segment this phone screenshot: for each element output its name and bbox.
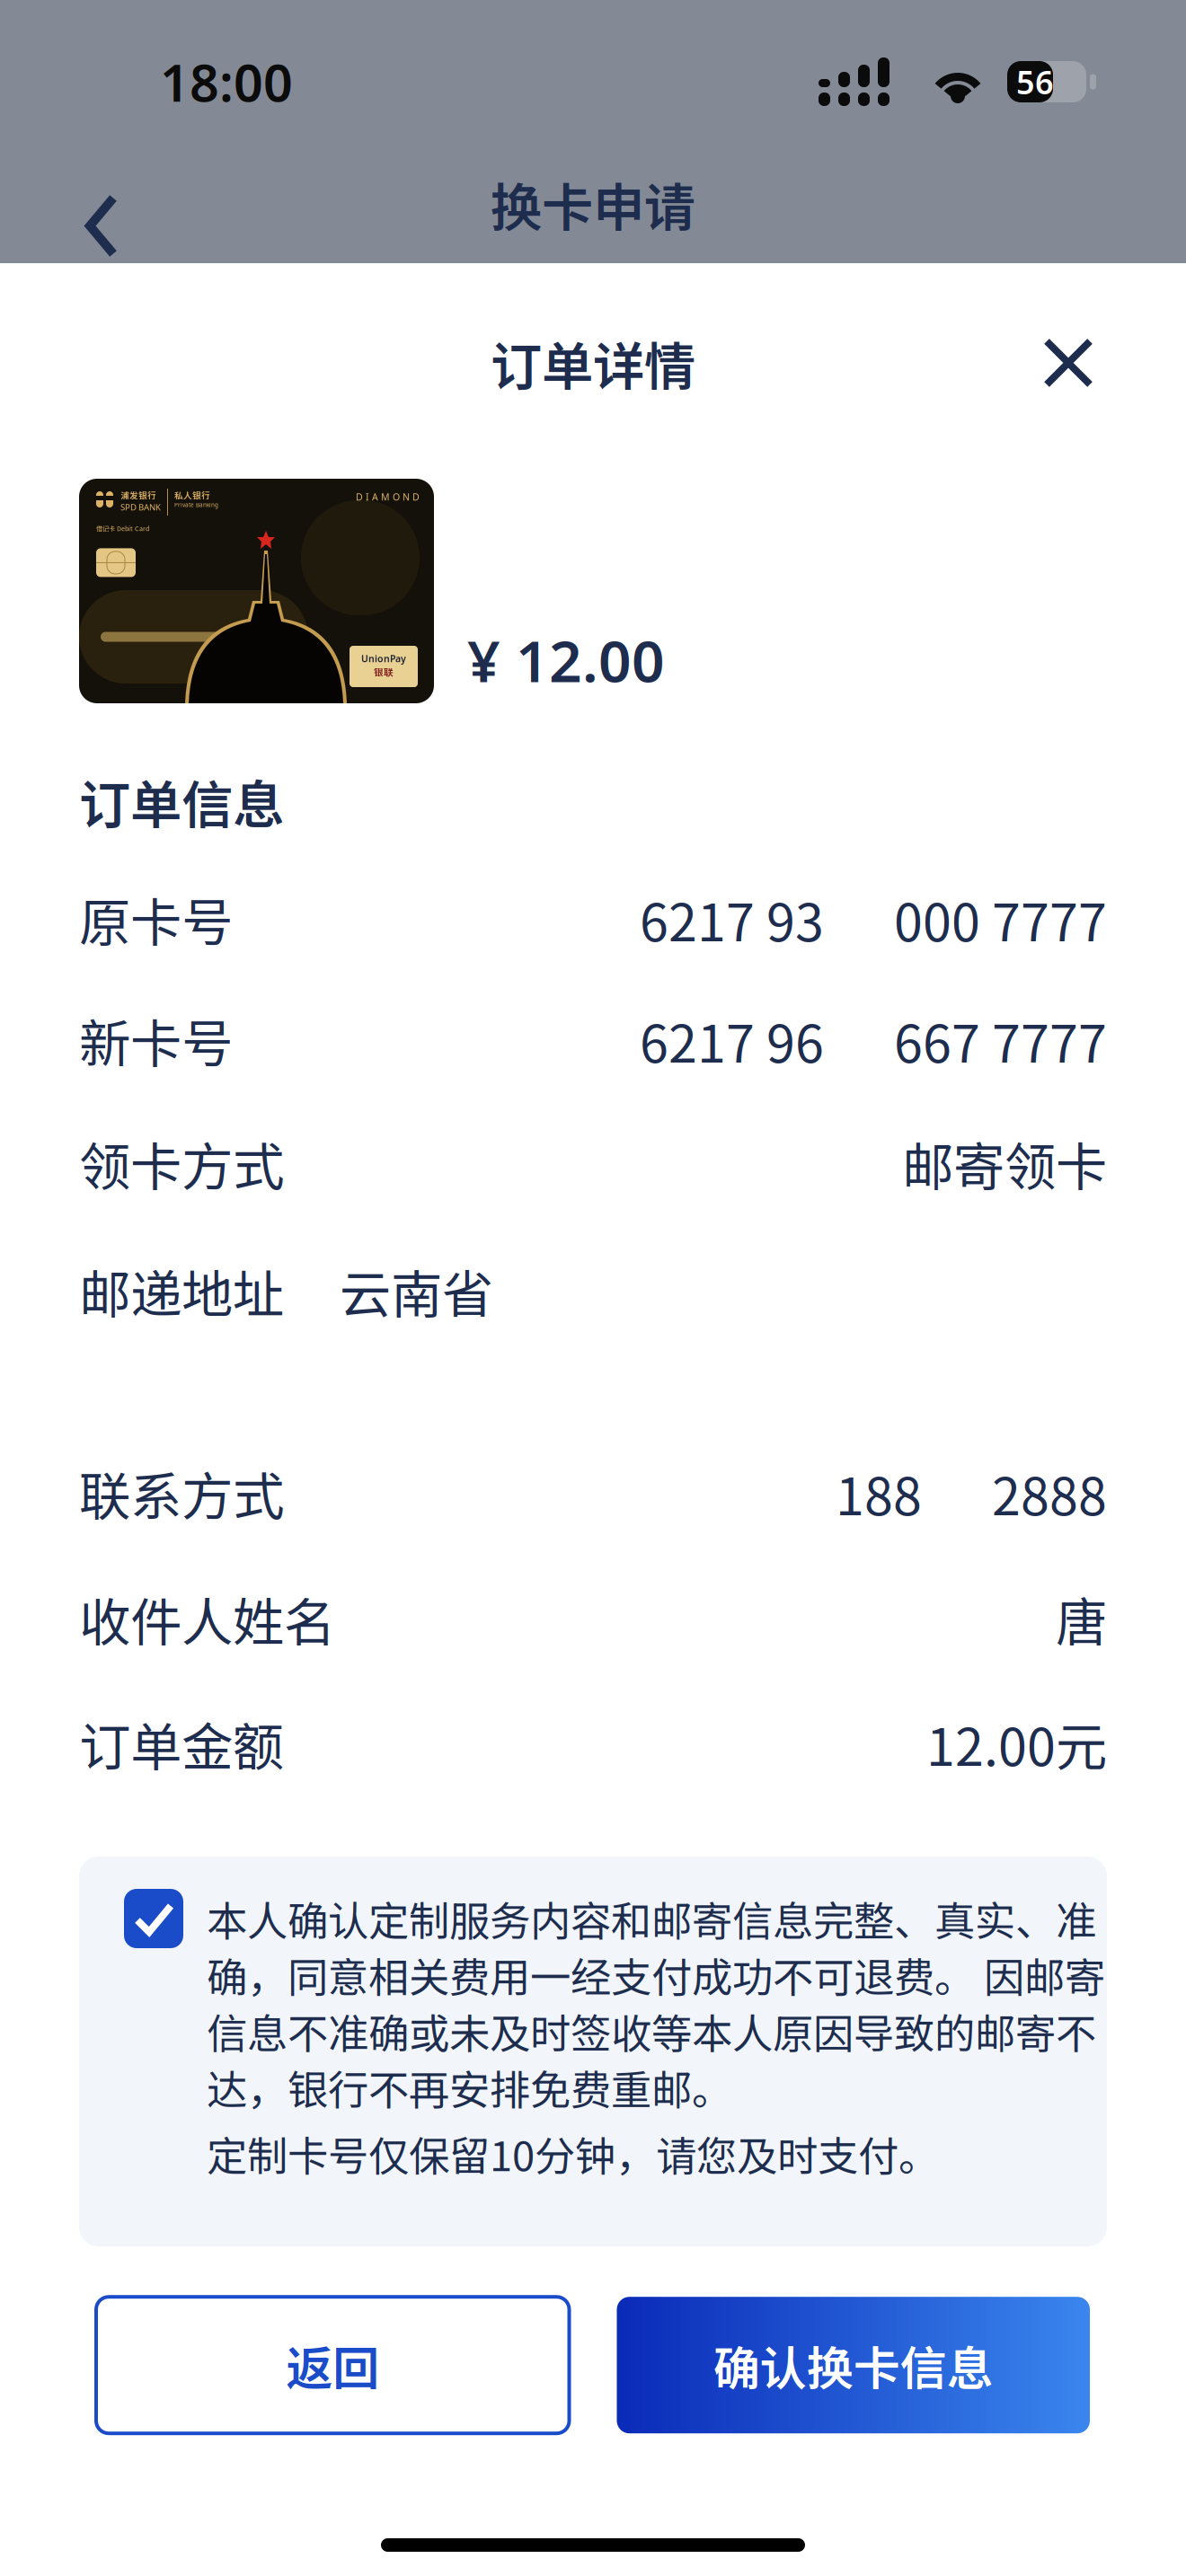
staticText: SPD BANK bbox=[120, 501, 161, 513]
staticText: 定制卡号仅保留10分钟，请您及时支付。 bbox=[207, 2124, 939, 2183]
staticText: 18:00 bbox=[160, 47, 293, 117]
staticText: 收件人姓名 bbox=[79, 1581, 335, 1656]
staticText: 私人银行 bbox=[174, 489, 210, 501]
staticText: 订单金额 bbox=[79, 1706, 284, 1781]
staticText: 6217 93 000 7777 bbox=[640, 882, 1107, 956]
staticText: 本人确认定制服务内容和邮寄信息完整、真实、准确，同意相关费用一经支付成功不可退费… bbox=[207, 1889, 1105, 2117]
staticText: 邮寄领卡 bbox=[902, 1126, 1107, 1200]
staticText: 换卡申请 bbox=[491, 167, 695, 241]
staticText: 唐 bbox=[1056, 1581, 1107, 1656]
staticText: UnionPay bbox=[361, 652, 406, 665]
staticText: 订单信息 bbox=[79, 764, 284, 838]
staticText: 6217 96 667 7777 bbox=[640, 1003, 1107, 1077]
staticText: 领卡方式 bbox=[79, 1126, 284, 1200]
staticText: 188 2888 bbox=[836, 1456, 1107, 1530]
staticText: 56 bbox=[1016, 60, 1054, 104]
staticText: 返回 bbox=[286, 2331, 379, 2399]
button[interactable]: 确认换卡信息 bbox=[617, 2297, 1090, 2433]
staticText: 新卡号 bbox=[79, 1003, 233, 1077]
button[interactable]: 返回 bbox=[96, 2297, 569, 2433]
staticText: 银联 bbox=[374, 665, 394, 679]
button[interactable]: 我已确认并同意 bbox=[124, 1889, 183, 1948]
staticText: Private Banking bbox=[174, 501, 218, 509]
staticText: 12.00元 bbox=[926, 1706, 1107, 1781]
staticText: 云南省 bbox=[340, 1253, 493, 1328]
staticText: 订单详情 bbox=[491, 326, 695, 400]
staticText: 邮递地址 bbox=[79, 1253, 284, 1328]
staticText: 联系方式 bbox=[79, 1456, 284, 1530]
staticText: D I A M O N D bbox=[356, 490, 420, 503]
button[interactable]: 返回 bbox=[0, 141, 150, 267]
staticText: 确认换卡信息 bbox=[713, 2331, 994, 2399]
staticText: 原卡号 bbox=[79, 882, 233, 956]
button[interactable]: 关闭 bbox=[1016, 314, 1120, 411]
staticText: 浦发银行 bbox=[120, 489, 156, 501]
staticText: ¥ 12.00 bbox=[467, 621, 665, 699]
staticText: 借记卡 Debit Card bbox=[96, 524, 149, 533]
